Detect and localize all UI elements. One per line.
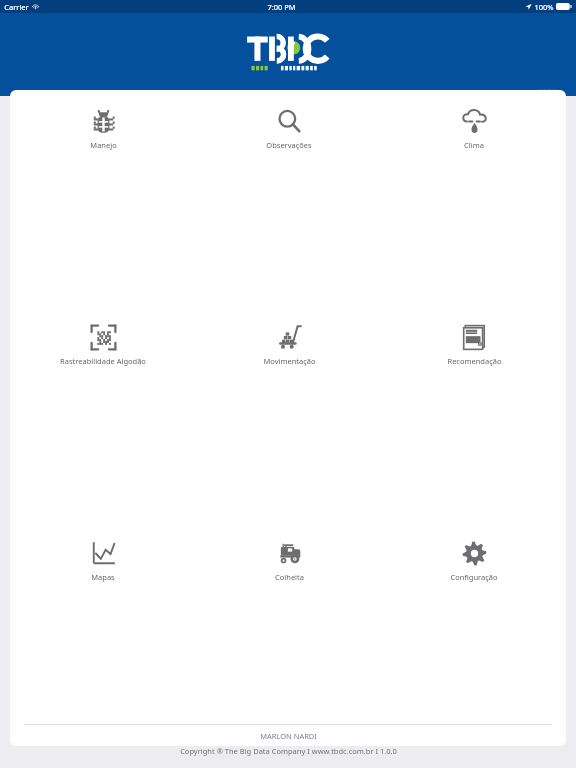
- button[interactable]: Movimentação: [229, 322, 349, 368]
- button[interactable]: Rastreabilidade Algodão: [43, 322, 163, 368]
- button[interactable]: Manejo: [43, 106, 163, 152]
- staticText: Configuração: [450, 572, 498, 582]
- staticText: Movimentação: [263, 356, 316, 366]
- staticText: Recomendação: [447, 356, 502, 366]
- button[interactable]: Recomendação: [414, 322, 534, 368]
- staticText: Colheita: [275, 572, 304, 582]
- staticText: Rastreabilidade Algodão: [60, 356, 146, 366]
- staticText: Clima: [464, 140, 484, 150]
- button[interactable]: Mapas: [43, 538, 163, 584]
- staticText: Manejo: [90, 140, 117, 150]
- button[interactable]: Observações: [229, 106, 349, 152]
- button[interactable]: Clima: [414, 106, 534, 152]
- staticText: MARLON NARDI: [260, 731, 317, 741]
- button[interactable]: Colheita: [229, 538, 349, 584]
- button[interactable]: Configuração: [414, 538, 534, 584]
- staticText: 100%: [534, 2, 554, 12]
- staticText: Carrier: [4, 2, 29, 12]
- staticText: 7:00 PM: [267, 2, 296, 12]
- staticText: Copyright ® The Big Data Company I www.t…: [180, 746, 397, 756]
- staticText: Mapas: [91, 572, 115, 582]
- staticText: Observações: [266, 140, 312, 150]
- other: TBDC Agro Softwares logo: [244, 34, 332, 76]
